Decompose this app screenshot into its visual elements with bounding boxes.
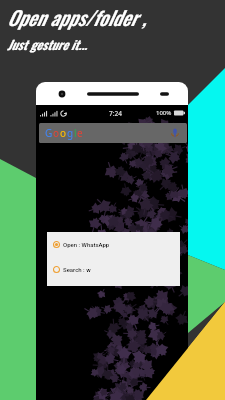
- staticText: 7:24: [109, 109, 122, 118]
- staticText: o: [60, 126, 67, 140]
- staticText: l: [74, 126, 77, 140]
- staticText: e: [77, 126, 83, 140]
- staticText: Search : w: [63, 266, 91, 273]
- staticText: 100%: [156, 109, 172, 117]
- button[interactable]: Voice search: [169, 127, 181, 139]
- staticText: Just gesture it...: [7, 35, 87, 54]
- button[interactable]: G: [39, 123, 187, 143]
- button[interactable]: Search : w: [52, 264, 91, 275]
- button[interactable]: Open : WhatsApp: [52, 239, 110, 250]
- staticText: Open : WhatsApp: [63, 241, 110, 248]
- staticText: g: [67, 126, 74, 140]
- staticText: o: [53, 126, 60, 140]
- staticText: G: [45, 126, 53, 140]
- staticText: Open apps/folder ,: [7, 3, 146, 32]
